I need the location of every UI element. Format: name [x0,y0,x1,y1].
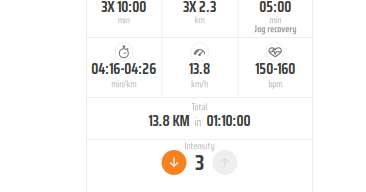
button[interactable]: Increase intensity [212,150,237,175]
staticText: 3 [195,146,204,179]
staticText: Jog recovery [254,22,296,36]
button[interactable]: Decrease intensity [161,150,186,175]
staticText: Total [191,100,207,114]
staticText: min [269,13,281,27]
staticText: 01:10:00 [206,109,250,133]
staticText: 13.8 [189,57,210,81]
staticText: bpm [268,77,282,91]
staticText: 150-160 [255,57,295,81]
staticText: 05:00 [259,0,291,19]
staticText: in [194,114,201,131]
staticText: 04:16-04:26 [91,57,156,81]
staticText: 3X 2.3 [183,0,216,19]
staticText: min/km [111,77,136,91]
staticText: km/h [191,77,208,91]
staticText: 13.8 KM [148,109,189,133]
staticText: km [194,13,204,27]
staticText: 3X 10:00 [101,0,146,19]
staticText: Intensity [184,139,214,153]
staticText: min [118,13,130,27]
